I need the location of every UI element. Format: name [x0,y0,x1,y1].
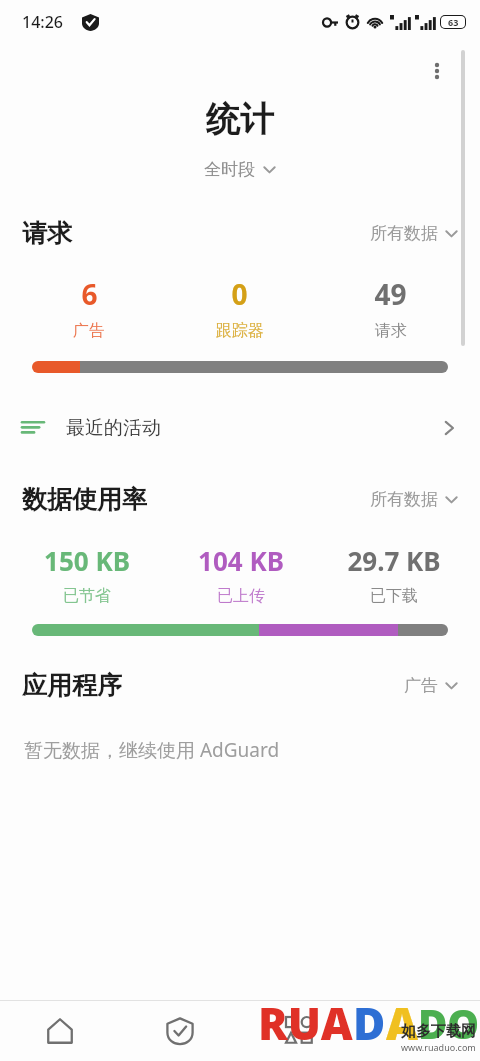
button[interactable]: Home [0,1001,120,1061]
button[interactable]: 0 [164,275,315,341]
staticText: 29.7 KB [347,543,441,578]
staticText: A [386,993,418,1053]
staticText: 数据使用率 [22,484,147,515]
button[interactable]: 6 [14,275,164,341]
staticText: 全时段 [204,159,255,180]
button[interactable]: 29.7 KB [317,543,470,606]
staticText: 所有数据 [370,489,438,510]
staticText: 广告 [73,321,105,341]
button[interactable]: 所有数据 [370,223,458,244]
button[interactable]: Protection [120,1001,240,1061]
staticText: 104 KB [198,543,284,578]
button[interactable]: 全时段 [0,159,480,180]
staticText: 14:26 [22,11,63,33]
staticText: 跟踪器 [216,321,264,341]
button[interactable]: 49 [315,275,466,341]
staticText: 请求 [375,321,407,341]
button[interactable]: 104 KB [164,543,317,606]
button[interactable]: 150 KB [10,543,164,606]
staticText: 最近的活动 [66,416,161,440]
staticText: 应用程序 [22,670,122,701]
button[interactable]: 所有数据 [370,489,458,510]
staticText: 63 [448,16,459,28]
staticText: 暂无数据，继续使用 AdGuard [24,737,280,763]
button[interactable]: Apps [240,1001,360,1061]
staticText: 150 KB [44,543,130,578]
staticText: 统计 [0,98,480,141]
staticText: RUA [258,993,353,1053]
staticText: 已上传 [217,586,265,606]
staticText: 广告 [404,675,438,696]
staticText: 已节省 [63,586,111,606]
staticText: 已下载 [370,586,418,606]
staticText: D [353,993,386,1053]
staticText: DO [418,996,480,1050]
staticText: 所有数据 [370,223,438,244]
button[interactable]: 最近的活动 [0,408,480,448]
staticText: www.ruaduo.com [401,1041,476,1053]
staticText: 49 [374,275,407,313]
staticText: 请求 [22,218,72,249]
staticText: 0 [231,275,248,313]
button[interactable]: 广告 [404,675,458,696]
button[interactable]: More options [422,56,452,86]
staticText: 6 [81,275,98,313]
staticText: 如多下载网 [401,1022,476,1041]
